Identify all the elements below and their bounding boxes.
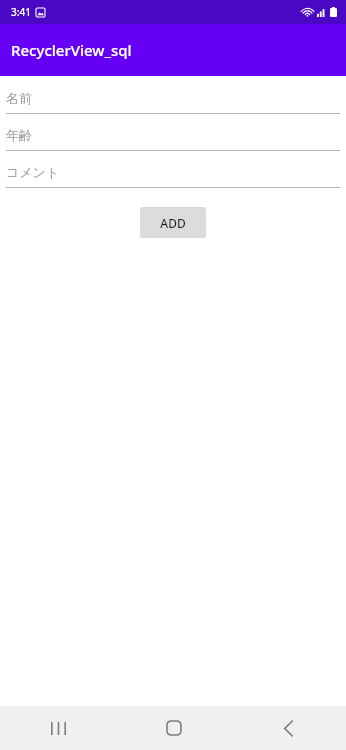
button[interactable]: 年齢 — [6, 119, 340, 156]
button[interactable]: 名前 — [6, 82, 340, 119]
staticText: RecyclerView_sql — [11, 40, 132, 60]
staticText: 名前 — [6, 90, 32, 106]
staticText: 3:41 — [11, 5, 31, 19]
staticText: 年齢 — [6, 127, 32, 143]
button[interactable]: ADD — [140, 207, 206, 238]
button[interactable]: コメント — [6, 156, 340, 193]
staticText: ADD — [160, 215, 186, 231]
button[interactable]: Back — [231, 706, 346, 750]
staticText: コメント — [6, 164, 60, 180]
button[interactable]: Home — [116, 706, 231, 750]
button[interactable]: Recent apps — [0, 706, 116, 750]
